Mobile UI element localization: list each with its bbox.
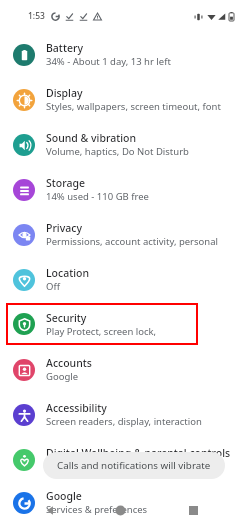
button[interactable]: Storage (0, 167, 241, 212)
staticText: Permissions, account activity, personal … (46, 235, 237, 248)
staticText: Accessibility (46, 401, 107, 415)
staticText: Screen readers, display, interaction con… (46, 415, 237, 428)
staticText: Volume, haptics, Do Not Disturb (46, 145, 189, 158)
button[interactable]: Accessibility (0, 392, 241, 437)
button[interactable]: Digital Wellbeing & parental controls (0, 437, 241, 482)
staticText: Styles, wallpapers, screen timeout, font… (46, 100, 237, 113)
staticText: Sound & vibration (46, 131, 137, 145)
staticText: Battery (46, 41, 83, 55)
staticText: Services & preferences (46, 503, 148, 516)
button[interactable]: Security (6, 303, 198, 345)
staticText: 34% - About 1 day, 13 hr left (46, 55, 171, 68)
staticText: Accounts (46, 356, 92, 370)
staticText: Google (46, 370, 79, 383)
staticText: Display (46, 86, 83, 100)
button[interactable]: Battery (0, 32, 241, 77)
staticText: Security (46, 311, 87, 325)
button[interactable]: Privacy (0, 212, 241, 257)
staticText: Calls and notifications will vibrate (57, 459, 211, 472)
button[interactable]: Google (0, 482, 241, 523)
staticText: Storage (46, 176, 85, 190)
button[interactable]: Calls and notifications will vibrate (43, 452, 225, 479)
staticText: Privacy (46, 221, 82, 235)
staticText: Digital Wellbeing & parental controls (46, 446, 231, 460)
button[interactable]: Home (115, 505, 126, 516)
staticText: Location (46, 266, 90, 280)
staticText: 14% used - 110 GB free (46, 190, 149, 203)
staticText: Play Protect, screen lock, fingerprint (46, 325, 194, 338)
button[interactable]: Sound & vibration (0, 122, 241, 167)
button[interactable]: Back (45, 505, 56, 516)
staticText: 1:53 (28, 10, 45, 22)
button[interactable]: Accounts (0, 347, 241, 392)
button[interactable]: Location (0, 257, 241, 302)
staticText: Google (46, 489, 82, 503)
staticText: Off (46, 280, 60, 293)
staticText: Screen time, app timers, bedtime schedul… (46, 460, 237, 473)
button[interactable]: Display (0, 77, 241, 122)
